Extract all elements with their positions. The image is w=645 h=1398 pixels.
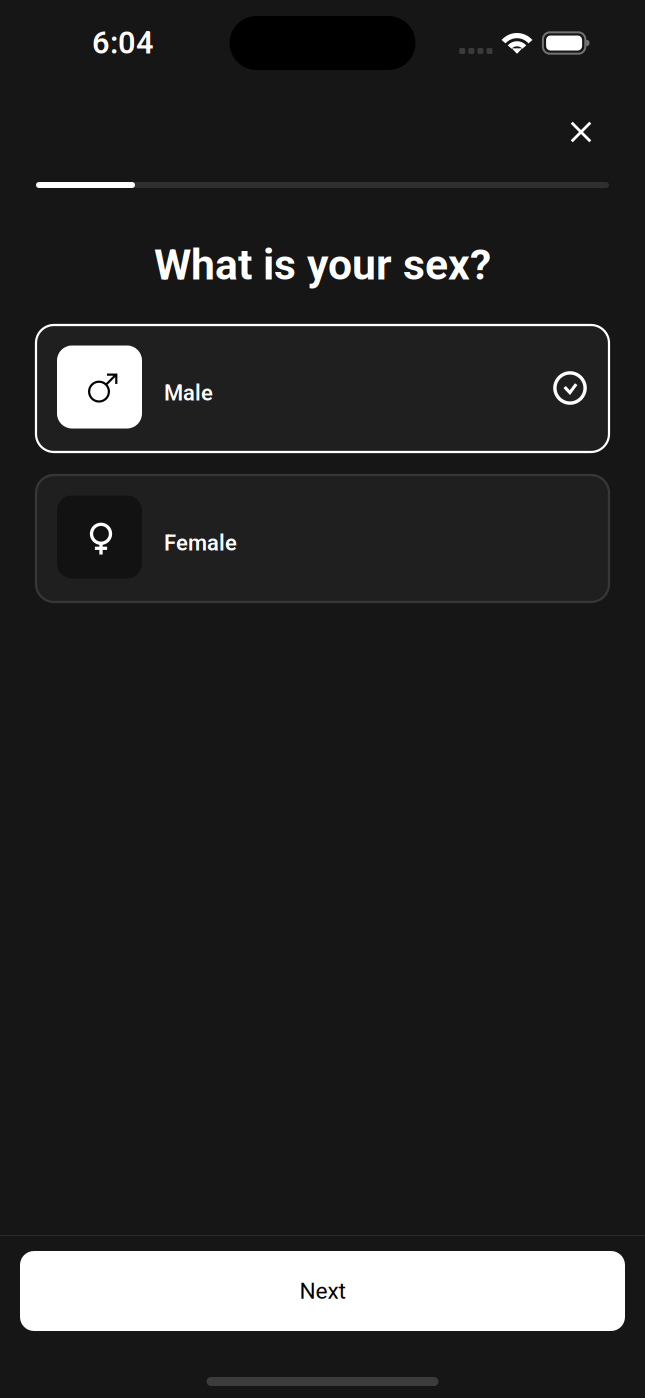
staticText: Next	[299, 1278, 345, 1304]
staticText: Male	[164, 380, 213, 406]
staticText: 6:04	[92, 25, 154, 61]
button[interactable]: Male	[36, 325, 609, 452]
staticText: What is your sex?	[154, 240, 491, 290]
button[interactable]: Female	[36, 475, 609, 602]
staticText: Female	[164, 530, 237, 556]
button[interactable]: Close	[557, 108, 605, 156]
button[interactable]: Next	[20, 1251, 625, 1331]
